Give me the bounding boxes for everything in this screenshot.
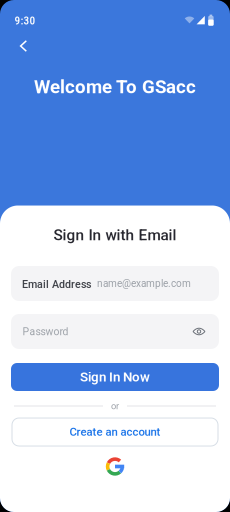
button[interactable]: Sign In Now [11,363,219,391]
staticText: 9:30 [14,14,35,27]
button[interactable]: Create an account [12,418,218,446]
staticText: Sign In Now [80,369,150,385]
staticText: name@example.com [97,278,191,289]
staticText: Welcome To GSacc [34,76,196,98]
button[interactable]: Show password [189,321,209,341]
staticText: Email Address [22,278,91,290]
staticText: Sign In with Email [53,226,176,244]
button[interactable]: Password [11,314,219,349]
staticText: Password [22,325,68,338]
button[interactable]: Back [12,34,36,58]
button[interactable]: Email Address [11,266,219,301]
button[interactable]: Sign in with Google [104,455,126,477]
staticText: Create an account [69,425,160,439]
staticText: or [111,400,119,411]
